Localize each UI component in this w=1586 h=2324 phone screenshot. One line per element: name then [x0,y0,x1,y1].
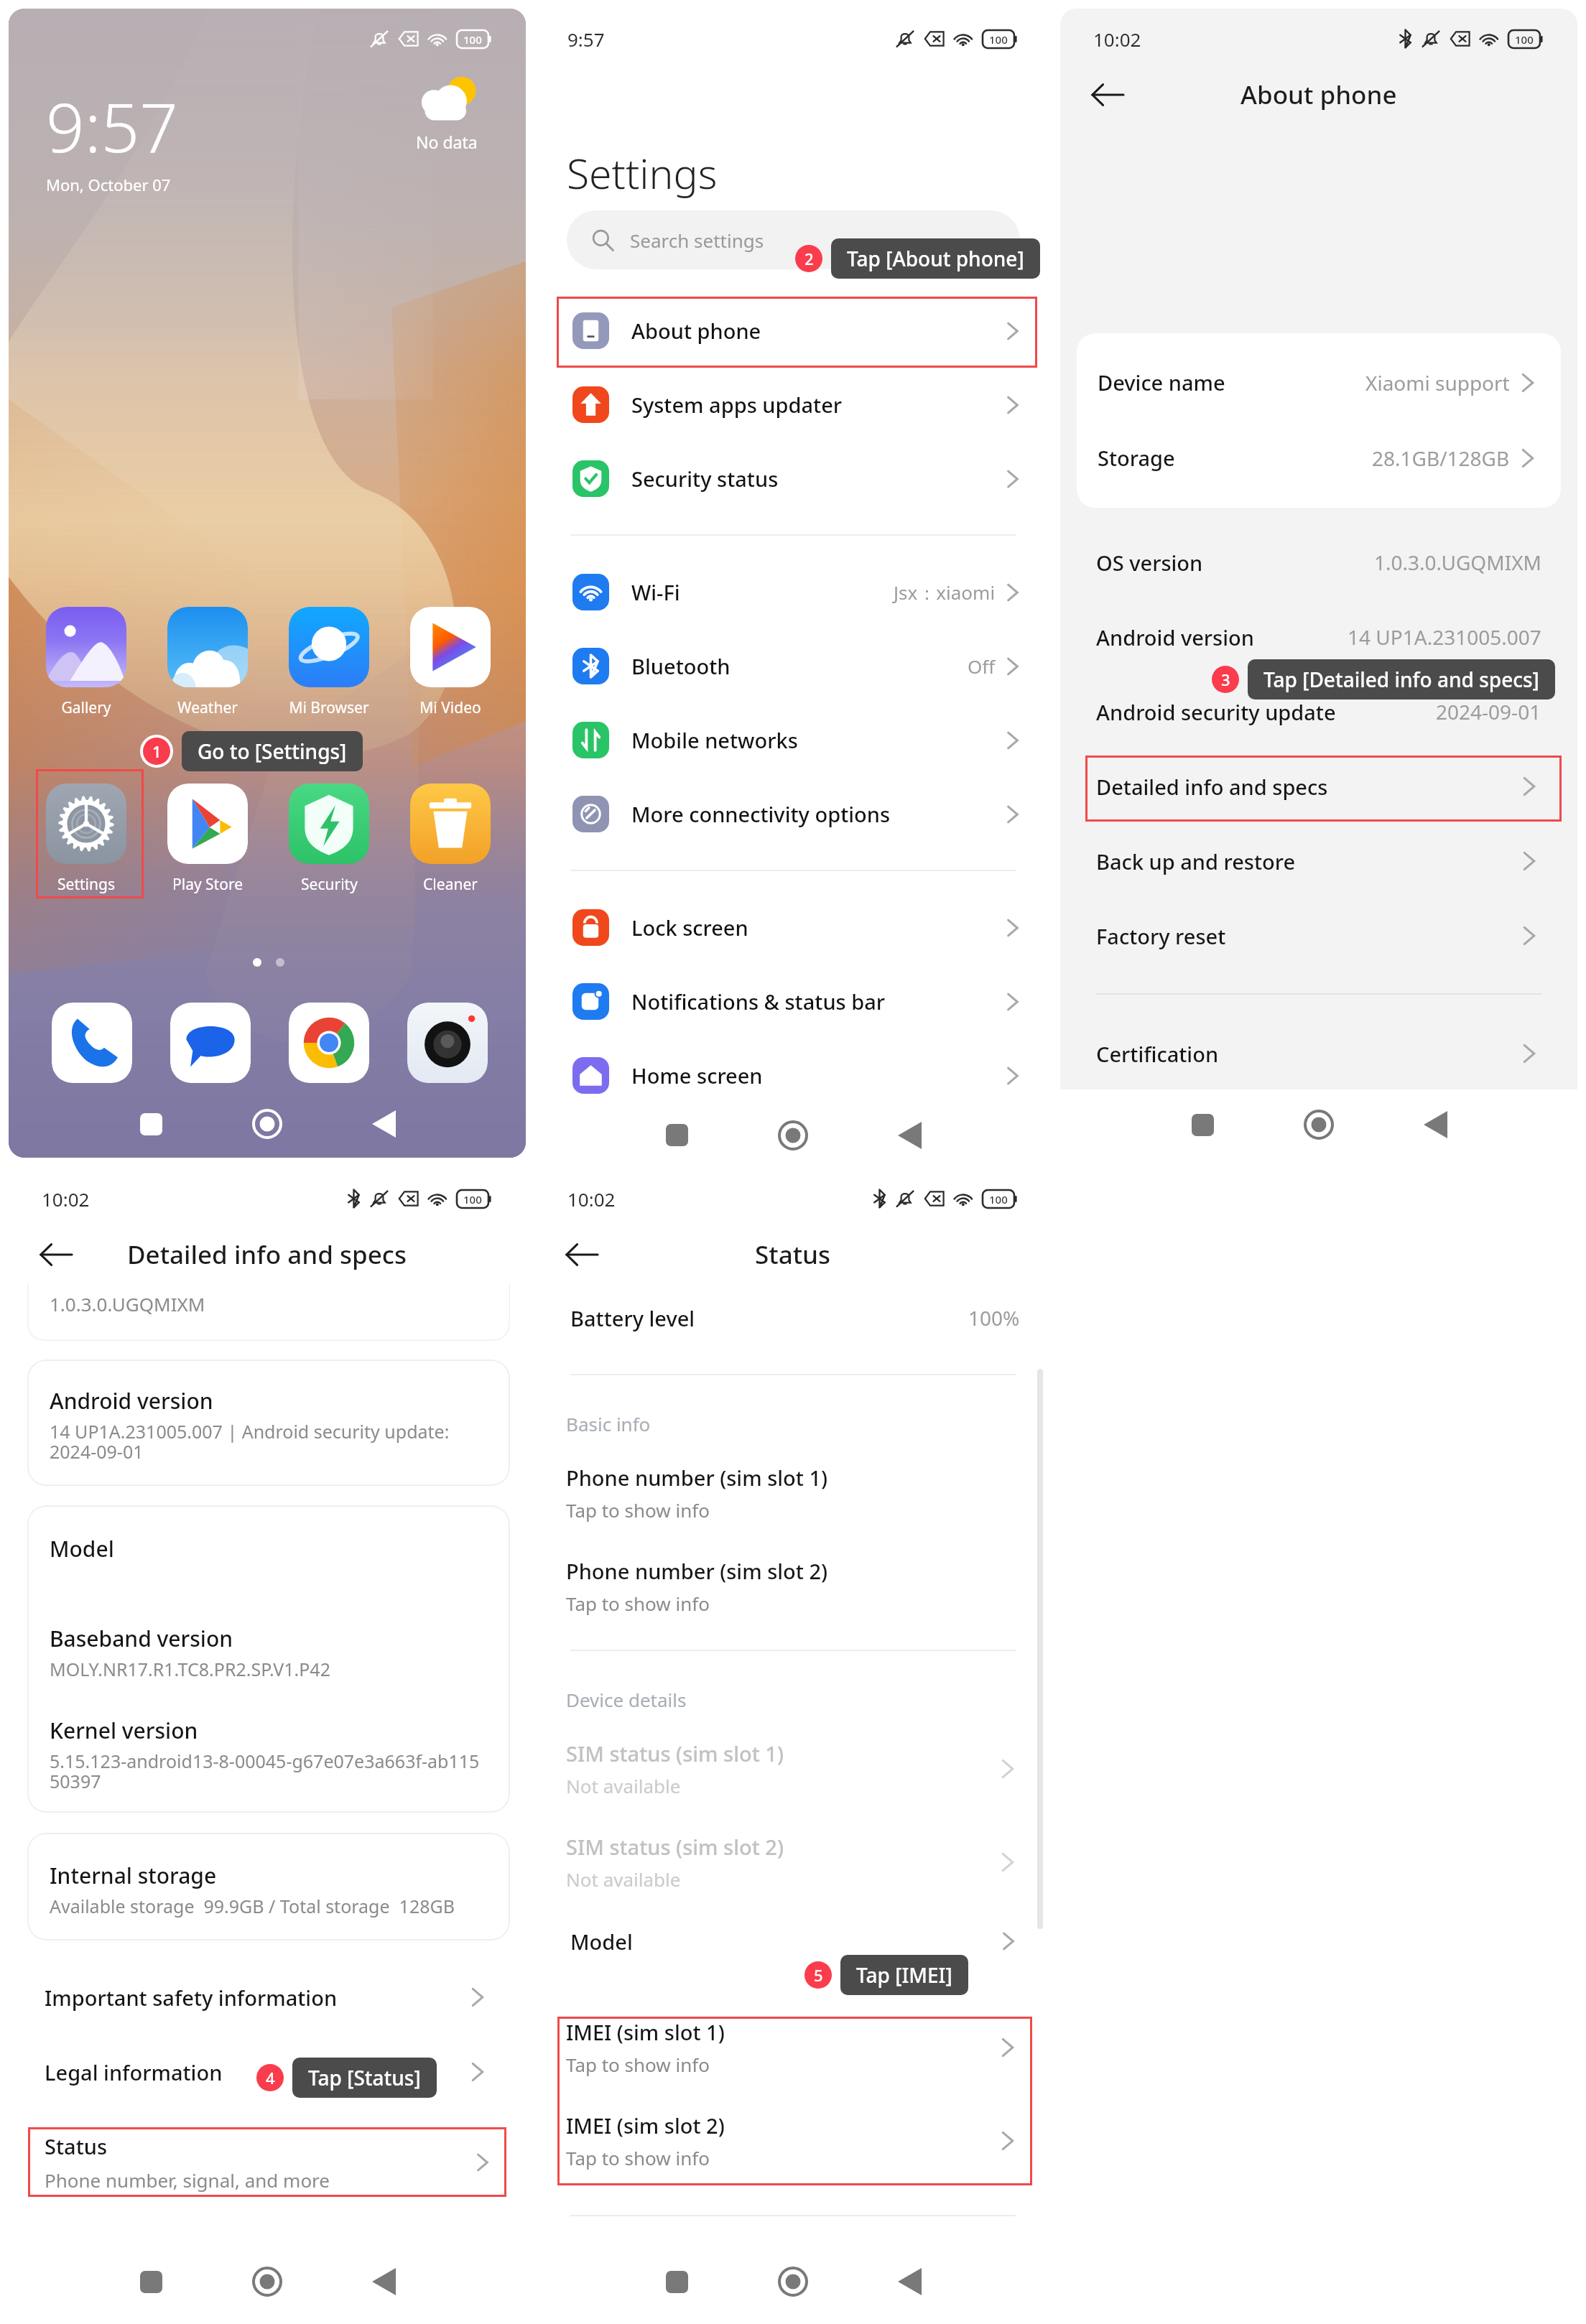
staticText: Settings [567,145,718,201]
button[interactable]: SIM status (sim slot 2) [534,1816,1052,1909]
button[interactable]: System apps updater [534,368,1052,442]
staticText: Settings [57,874,115,895]
staticText: Home screen [631,1061,763,1089]
staticText: Not available [566,1773,681,1798]
button[interactable]: Recents [118,2249,184,2315]
button[interactable]: Android security update [1060,674,1577,749]
staticText: MOLY.NR17.R1.TC8.PR2.SP.V1.P42 [50,1657,330,1681]
button[interactable]: Search settings [567,210,1020,269]
staticText: Baseband version [50,1624,233,1653]
button[interactable]: Mi Browser [289,607,369,718]
staticText: Lock screen [631,914,748,942]
staticText: Bluetooth [631,652,731,680]
staticText: OS version [1096,549,1203,577]
button[interactable]: Device name [1077,345,1561,420]
button[interactable]: Recents [644,1112,710,1158]
button[interactable]: Back [1085,72,1131,118]
button[interactable]: OS version [1060,525,1577,600]
button[interactable]: Model [534,1920,1052,1962]
button[interactable]: Home [234,2249,300,2315]
staticText: Tap [About phone] [847,245,1024,272]
button[interactable]: More connectivity options [534,777,1052,851]
button[interactable]: Phone number (sim slot 2) [534,1540,1052,1633]
button[interactable]: Home [234,1091,300,1157]
button[interactable]: Cleaner [410,784,491,895]
button[interactable]: Wi-Fi [534,555,1052,629]
staticText: 14 UP1A.231005.007 | Android security up… [50,1419,450,1464]
button[interactable]: About phone [534,294,1052,368]
staticText: About phone [1240,78,1397,112]
staticText: About phone [631,317,761,345]
button[interactable]: Play Store [167,784,248,895]
button[interactable]: Mobile networks [534,703,1052,777]
button[interactable]: Gallery [46,607,126,718]
staticText: Phone number (sim slot 1) [566,1464,828,1492]
button[interactable]: SIM status (sim slot 1) [534,1722,1052,1816]
staticText: Storage [1098,444,1175,472]
button[interactable]: Detailed info and specs [1060,749,1577,824]
staticText: Mon, October 07 [46,174,171,195]
button[interactable]: Back [876,2249,942,2315]
staticText: Off [968,654,996,679]
staticText: IMEI (sim slot 2) [566,2111,725,2139]
button[interactable]: Bluetooth [534,629,1052,703]
button[interactable]: Factory reset [1060,898,1577,973]
button[interactable]: Storage [1077,420,1561,496]
button[interactable]: Security status [534,442,1052,516]
staticText: Tap [Detailed info and specs] [1263,666,1539,693]
button[interactable]: Legal information [9,2035,526,2109]
button[interactable]: Weather [167,607,248,718]
staticText: Battery level [570,1304,695,1332]
button[interactable]: Status [9,2127,526,2197]
button[interactable]: Back [351,1091,417,1157]
button[interactable]: Recents [1169,1092,1235,1158]
button[interactable]: App [289,1003,369,1083]
button[interactable]: Security [289,784,369,895]
staticText: Mi Browser [289,697,369,718]
staticText: Mobile networks [631,726,798,754]
button[interactable]: Android version [1060,600,1577,674]
button[interactable]: Battery level [534,1298,1052,1338]
staticText: Gallery [61,697,111,718]
staticText: Android version [1096,623,1254,651]
staticText: 4 [266,2067,275,2088]
staticText: 100 [989,32,1008,47]
button[interactable]: App [407,1003,488,1083]
staticText: Detailed info and specs [127,1237,407,1272]
staticText: Device details [566,1687,687,1712]
button[interactable]: Home [760,1112,826,1158]
staticText: Search settings [630,228,764,253]
staticText: More connectivity options [631,800,891,828]
staticText: Tap to show info [566,2145,710,2170]
button[interactable]: Phone number (sim slot 1) [534,1446,1052,1540]
button[interactable]: App [52,1003,132,1083]
staticText: Model [570,1928,633,1956]
button[interactable]: Mi Video [410,607,491,718]
staticText: Internal storage [50,1861,217,1890]
button[interactable]: Home [760,2249,826,2315]
button[interactable]: Notifications & status bar [534,965,1052,1038]
button[interactable]: IMEI (sim slot 2) [534,2094,1052,2188]
button[interactable]: Home [1286,1092,1352,1158]
button[interactable]: Back up and restore [1060,824,1577,898]
button[interactable]: IMEI (sim slot 1) [534,2001,1052,2094]
staticText: Wi-Fi [631,578,680,606]
button[interactable]: Back [876,1112,942,1158]
button[interactable]: Back [351,2249,417,2315]
button[interactable]: App [170,1003,251,1083]
button[interactable]: Important safety information [9,1960,526,2035]
button[interactable]: Back [559,1232,605,1278]
staticText: Android version [50,1386,213,1416]
button[interactable]: Back [33,1232,79,1278]
button[interactable]: Certification [1060,1016,1577,1091]
button[interactable]: Recents [644,2249,710,2315]
staticText: Basic info [566,1411,651,1436]
button[interactable]: Settings [46,784,126,895]
button[interactable]: Home screen [534,1038,1052,1112]
button[interactable]: Back [1402,1092,1468,1158]
staticText: Phone number (sim slot 2) [566,1557,828,1585]
staticText: Legal information [45,2058,223,2086]
button[interactable]: Recents [118,1091,184,1157]
button[interactable]: Lock screen [534,891,1052,965]
staticText: No data [416,131,478,153]
